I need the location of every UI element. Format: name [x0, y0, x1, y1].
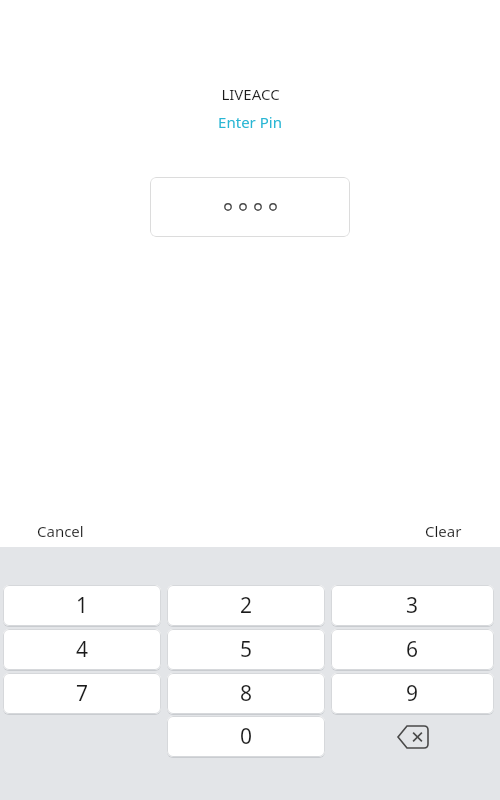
button[interactable]: Cancel [0, 521, 96, 541]
button[interactable] [150, 177, 350, 237]
staticText: 2 [240, 591, 253, 620]
button[interactable]: 4 [3, 629, 161, 671]
staticText: 9 [406, 679, 419, 708]
staticText: Cancel [37, 521, 84, 541]
button[interactable]: 6 [331, 629, 494, 671]
button[interactable]: 2 [167, 585, 325, 627]
button[interactable]: 7 [3, 673, 161, 715]
staticText: 7 [76, 679, 89, 708]
staticText: Enter Pin [218, 112, 282, 132]
staticText: 4 [76, 635, 89, 664]
button[interactable]: 1 [3, 585, 161, 627]
button[interactable]: Backspace [331, 716, 494, 757]
staticText: 8 [240, 679, 253, 708]
staticText: 0 [240, 722, 253, 751]
button[interactable]: 3 [331, 585, 494, 627]
button[interactable]: 0 [167, 716, 325, 758]
staticText: 3 [406, 591, 419, 620]
staticText: 1 [76, 591, 89, 620]
button[interactable]: 9 [331, 673, 494, 715]
button[interactable]: 5 [167, 629, 325, 671]
staticText: Clear [425, 521, 462, 541]
staticText: 5 [240, 635, 253, 664]
button[interactable]: 8 [167, 673, 325, 715]
button[interactable]: Clear [413, 521, 500, 541]
staticText: LIVEACC [221, 84, 280, 104]
staticText: 6 [406, 635, 419, 664]
